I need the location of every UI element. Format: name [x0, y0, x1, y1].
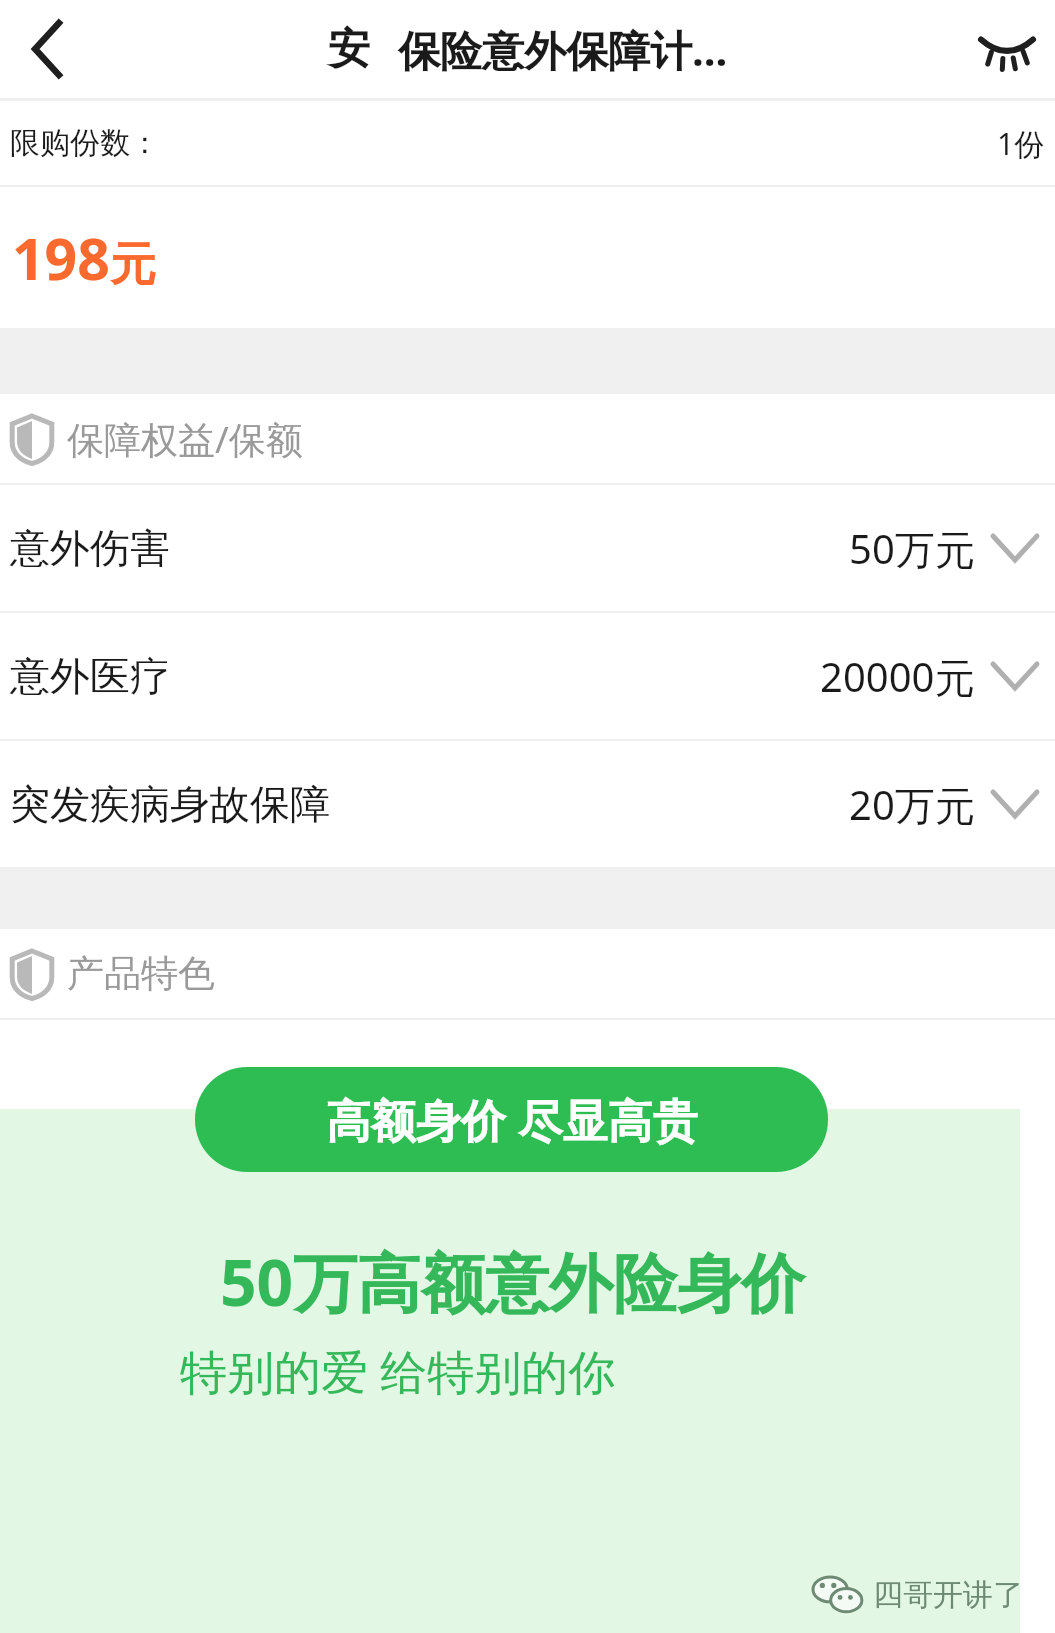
button[interactable]: 意外医疗 — [0, 613, 1055, 739]
button[interactable]: Back — [0, 1, 96, 97]
button[interactable]: 意外伤害 — [0, 485, 1055, 611]
staticText: 20万元 — [849, 777, 975, 832]
staticText: 20000元 — [820, 649, 975, 704]
staticText: 保险意外保障计... — [398, 21, 728, 78]
staticText: 产品特色 — [67, 950, 215, 997]
staticText: 四哥开讲了 — [873, 1576, 1023, 1614]
staticText: 保障权益/保额 — [67, 413, 303, 464]
staticText: 50万高额意外险身价 — [0, 1238, 1025, 1325]
button[interactable]: 突发疾病身故保障 — [0, 741, 1055, 867]
staticText: 限购份数： — [10, 124, 160, 162]
staticText: 意外伤害 — [10, 523, 170, 573]
staticText: 1份 — [997, 123, 1045, 164]
staticText: 50万元 — [849, 521, 975, 576]
button[interactable]: 高额身价 尽显高贵 — [195, 1067, 828, 1172]
button[interactable]: 限购份数： — [0, 101, 1055, 185]
staticText: 突发疾病身故保障 — [10, 779, 330, 829]
button[interactable]: Hide — [959, 1, 1055, 97]
staticText: 安 — [328, 23, 370, 76]
staticText: 高额身价 尽显高贵 — [326, 1089, 698, 1150]
staticText: 元 — [110, 236, 156, 294]
staticText: 特别的爱 给特别的你 — [180, 1339, 616, 1403]
staticText: 198 — [12, 219, 110, 297]
staticText: 意外医疗 — [10, 651, 170, 701]
